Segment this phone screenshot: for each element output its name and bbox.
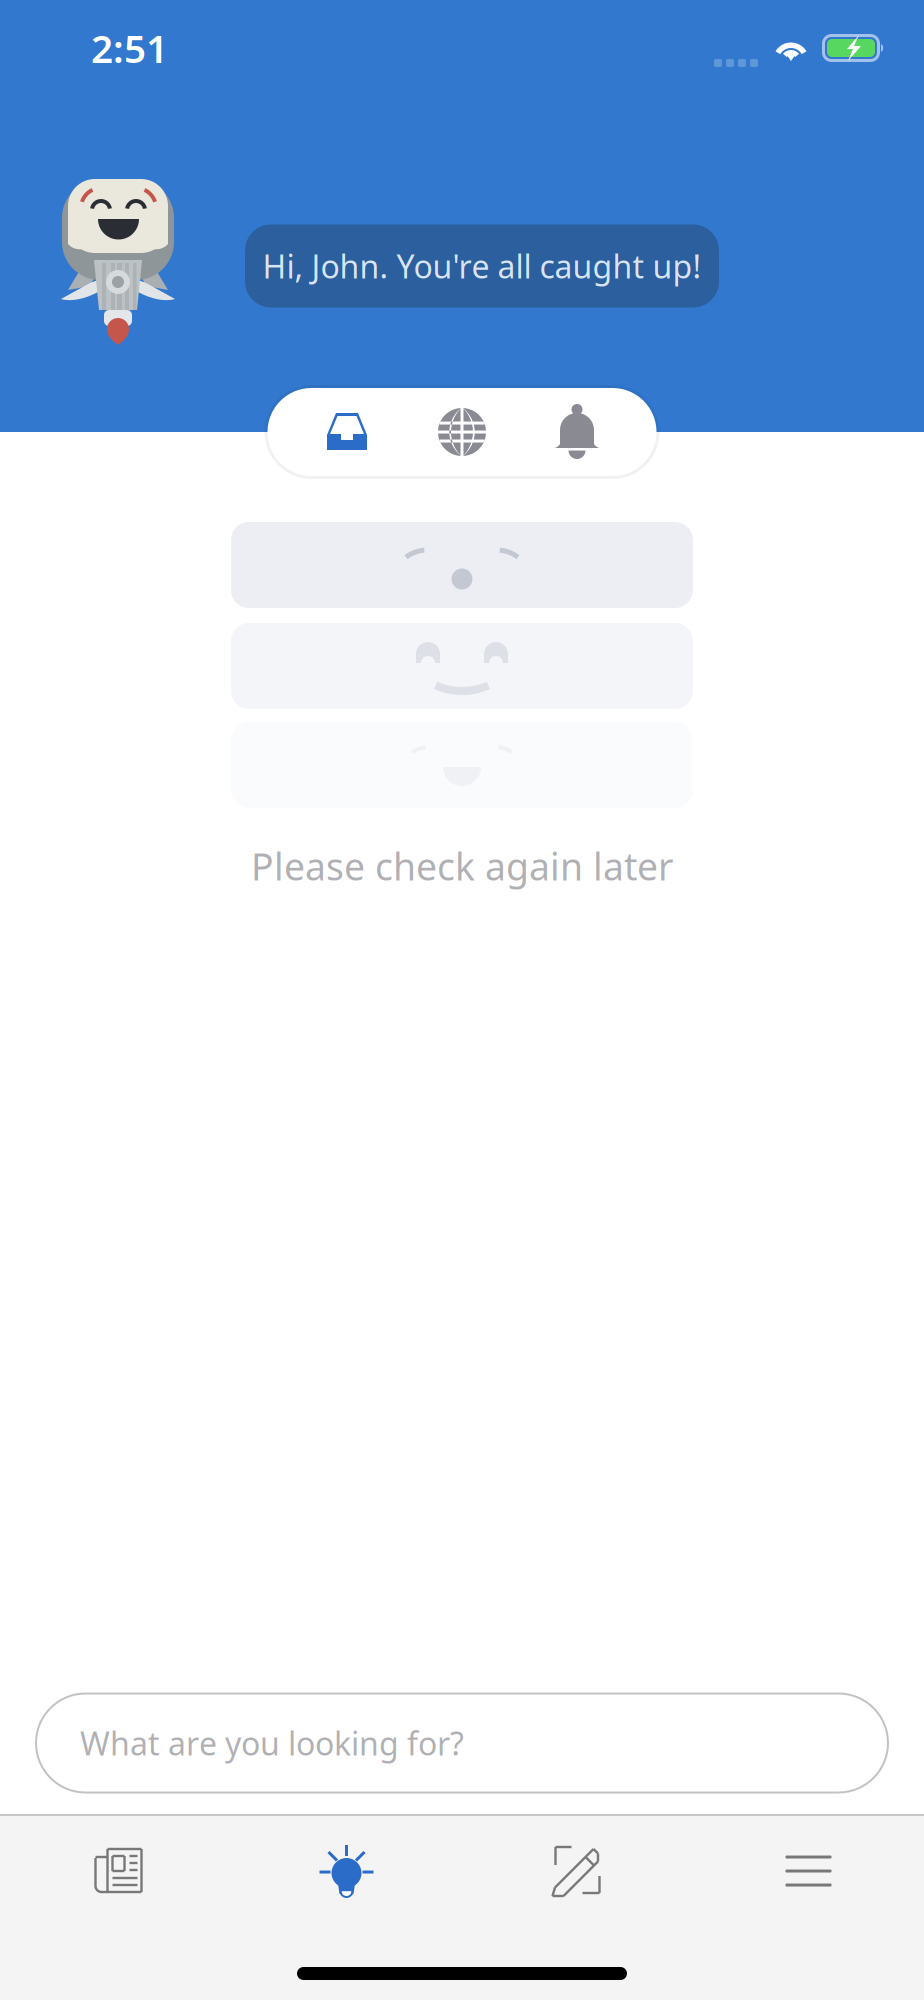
staticText: 2:51 bbox=[91, 22, 168, 74]
button[interactable]: Discover bbox=[404, 388, 519, 476]
button[interactable]: Ideas bbox=[231, 1816, 462, 1926]
button[interactable]: Notifications bbox=[519, 388, 634, 476]
button[interactable]: Compose bbox=[462, 1816, 693, 1926]
button[interactable]: Menu bbox=[693, 1816, 924, 1926]
button[interactable]: What are you looking for? bbox=[36, 1693, 888, 1792]
button[interactable]: News bbox=[0, 1816, 231, 1926]
staticText: Please check again later bbox=[251, 841, 673, 891]
button[interactable]: Inbox bbox=[289, 388, 404, 476]
staticText: Hi, John. You're all caught up! bbox=[262, 245, 701, 287]
staticText: What are you looking for? bbox=[80, 1722, 464, 1764]
